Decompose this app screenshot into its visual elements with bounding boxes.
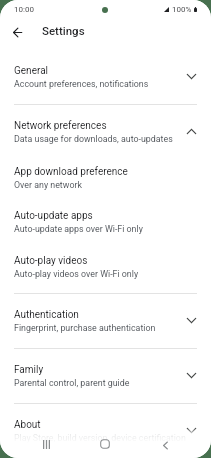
- staticText: 100%: [172, 5, 192, 14]
- staticText: Auto-update apps: [14, 210, 93, 222]
- button[interactable]: General: [0, 49, 211, 104]
- button[interactable]: Family: [0, 348, 211, 403]
- staticText: About: [14, 419, 41, 431]
- button[interactable]: Recent apps: [36, 434, 56, 454]
- button[interactable]: Home: [95, 434, 115, 454]
- button[interactable]: Back: [4, 19, 30, 45]
- other: Collapse: [186, 126, 197, 137]
- staticText: Family: [14, 364, 44, 376]
- button[interactable]: Authentication: [0, 293, 211, 348]
- staticText: General: [14, 65, 49, 77]
- staticText: Account preferences, notifications: [14, 79, 149, 89]
- staticText: Settings: [42, 24, 85, 37]
- staticText: 10:00: [14, 5, 34, 14]
- staticText: App download preference: [14, 166, 128, 178]
- button[interactable]: Network preferences: [0, 104, 211, 159]
- button[interactable]: Auto-play videos: [0, 248, 211, 293]
- staticText: Auto-update apps over Wi-Fi only: [14, 224, 143, 234]
- staticText: Data usage for downloads, auto-updates: [14, 134, 173, 144]
- other: Expand: [186, 425, 197, 436]
- staticText: Auto-play videos over Wi-Fi only: [14, 269, 139, 279]
- staticText: Authentication: [14, 309, 79, 321]
- staticText: Auto-play videos: [14, 255, 88, 267]
- button[interactable]: Back: [155, 435, 175, 455]
- button[interactable]: About: [0, 403, 211, 458]
- other: Expand: [186, 71, 197, 82]
- staticText: Fingerprint, purchase authentication: [14, 323, 156, 333]
- other: Expand: [186, 315, 197, 326]
- staticText: Play Store, build version, device certif…: [14, 433, 186, 443]
- button[interactable]: App download preference: [0, 159, 211, 204]
- staticText: Network preferences: [14, 120, 107, 132]
- button[interactable]: Auto-update apps: [0, 203, 211, 248]
- other: Expand: [186, 370, 197, 381]
- staticText: Parental control, parent guide: [14, 378, 130, 388]
- staticText: Over any network: [14, 180, 82, 190]
